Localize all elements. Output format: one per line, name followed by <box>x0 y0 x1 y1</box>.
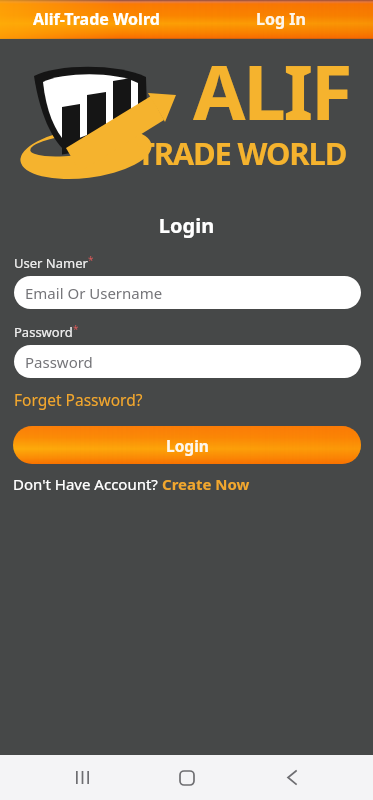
staticText: Alif-Trade Wolrd <box>33 8 160 30</box>
staticText: Don't Have Account? <box>13 474 162 494</box>
staticText: * <box>88 253 94 267</box>
button[interactable]: Create Now <box>162 474 250 494</box>
button[interactable]: Log In <box>256 8 306 30</box>
staticText: Create Now <box>162 474 250 494</box>
staticText: Password <box>14 323 73 341</box>
staticText: TRADE WORLD <box>137 132 347 174</box>
button[interactable]: Recent apps <box>60 755 105 800</box>
button[interactable]: Back <box>269 755 314 800</box>
staticText: ALIF <box>193 39 351 143</box>
staticText: Login <box>0 212 373 239</box>
staticText: User Namer <box>14 254 88 272</box>
staticText: * <box>73 322 79 336</box>
staticText: Password <box>25 352 93 372</box>
button[interactable]: Forget Password? <box>14 389 143 410</box>
staticText: Log In <box>256 8 306 30</box>
staticText: Login <box>166 435 209 456</box>
staticText: Forget Password? <box>14 389 143 410</box>
button[interactable]: Login <box>13 426 361 464</box>
staticText: Email Or Username <box>25 283 163 303</box>
button[interactable]: Home <box>164 755 209 800</box>
button[interactable]: Password <box>14 345 361 378</box>
button[interactable]: Email Or Username <box>14 276 361 309</box>
